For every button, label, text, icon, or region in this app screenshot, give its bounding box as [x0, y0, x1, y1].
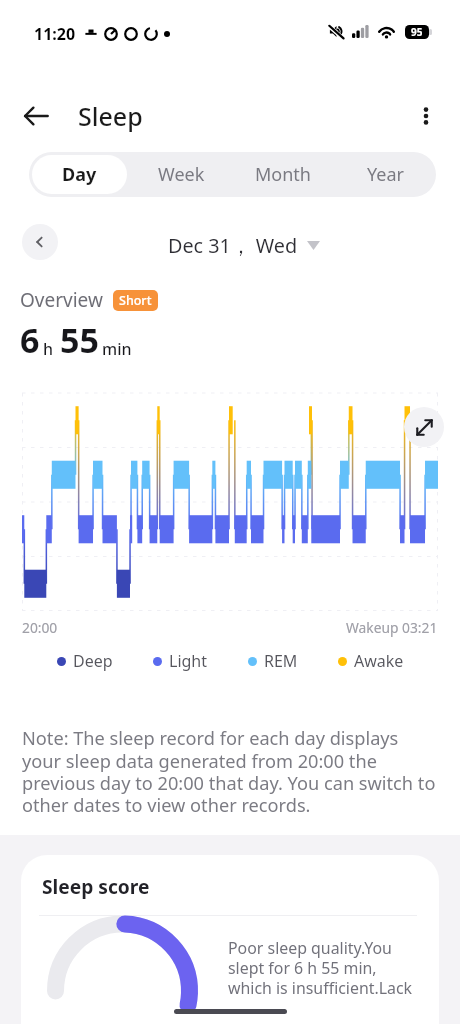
staticText: Sleep	[78, 99, 143, 133]
button[interactable]: Year	[337, 155, 433, 194]
staticText: Short	[119, 292, 152, 309]
staticText: h	[43, 338, 54, 360]
staticText: REM	[264, 650, 298, 672]
staticText: 6	[20, 317, 40, 363]
staticText: 95	[411, 25, 423, 39]
staticText: Year	[367, 162, 404, 187]
staticText: min	[102, 338, 132, 360]
button[interactable]: Previous day	[22, 224, 58, 260]
button[interactable]: Back	[14, 94, 58, 138]
button[interactable]: Dec 31， Wed	[168, 232, 320, 259]
staticText: Poor sleep quality.You slept for 6 h 55 …	[228, 937, 414, 998]
staticText: Note: The sleep record for each day disp…	[22, 726, 438, 817]
button[interactable]: Month	[235, 155, 331, 194]
staticText: Awake	[354, 650, 404, 672]
button[interactable]: More options	[404, 94, 448, 138]
staticText: Light	[169, 650, 208, 672]
staticText: 11:20	[34, 23, 76, 45]
button[interactable]: Day	[32, 155, 127, 194]
staticText: Dec 31， Wed	[168, 232, 298, 259]
button[interactable]: Expand chart	[404, 407, 444, 447]
staticText: Day	[62, 162, 97, 187]
staticText: 55	[60, 317, 99, 363]
staticText: Wakeup 03:21	[346, 618, 438, 637]
staticText: Week	[158, 162, 205, 187]
staticText: Overview	[20, 287, 103, 313]
button[interactable]: Week	[133, 155, 229, 194]
staticText: Month	[255, 162, 311, 187]
staticText: Sleep score	[42, 873, 150, 899]
staticText: Deep	[73, 650, 113, 672]
staticText: 20:00	[22, 618, 58, 637]
